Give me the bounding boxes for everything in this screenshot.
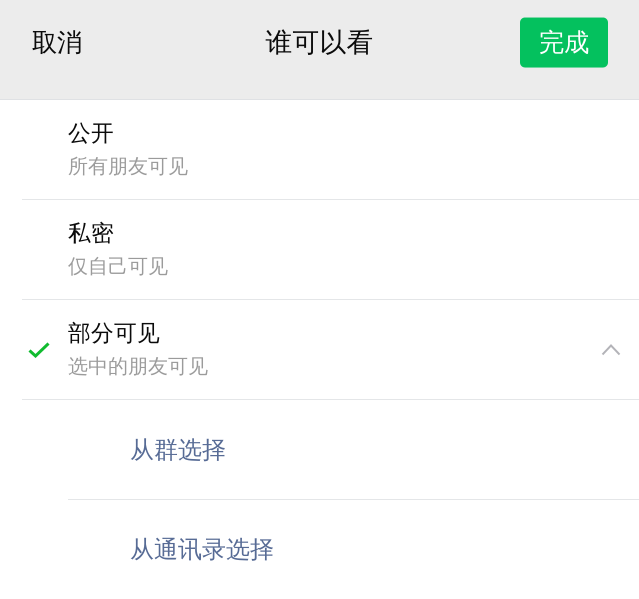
button[interactable]: 从群选择 — [0, 400, 639, 500]
staticText: 谁可以看 — [265, 26, 373, 59]
button[interactable]: 公开 — [0, 100, 639, 200]
button[interactable]: 取消 — [0, 16, 82, 68]
button[interactable]: 私密 — [0, 200, 639, 300]
button[interactable]: 部分可见 — [0, 300, 639, 400]
staticText: 完成 — [539, 27, 589, 58]
staticText: 公开 — [68, 119, 114, 147]
staticText: 部分可见 — [68, 319, 160, 347]
staticText: 选中的朋友可见 — [68, 354, 208, 379]
staticText: 从通讯录选择 — [130, 535, 274, 564]
staticText: 取消 — [32, 27, 82, 58]
staticText: 从群选择 — [130, 435, 226, 465]
button[interactable]: 从通讯录选择 — [0, 500, 639, 599]
staticText: 所有朋友可见 — [68, 154, 188, 179]
staticText: 仅自己可见 — [68, 254, 168, 279]
staticText: 私密 — [68, 219, 114, 247]
button[interactable]: 完成 — [520, 17, 639, 67]
